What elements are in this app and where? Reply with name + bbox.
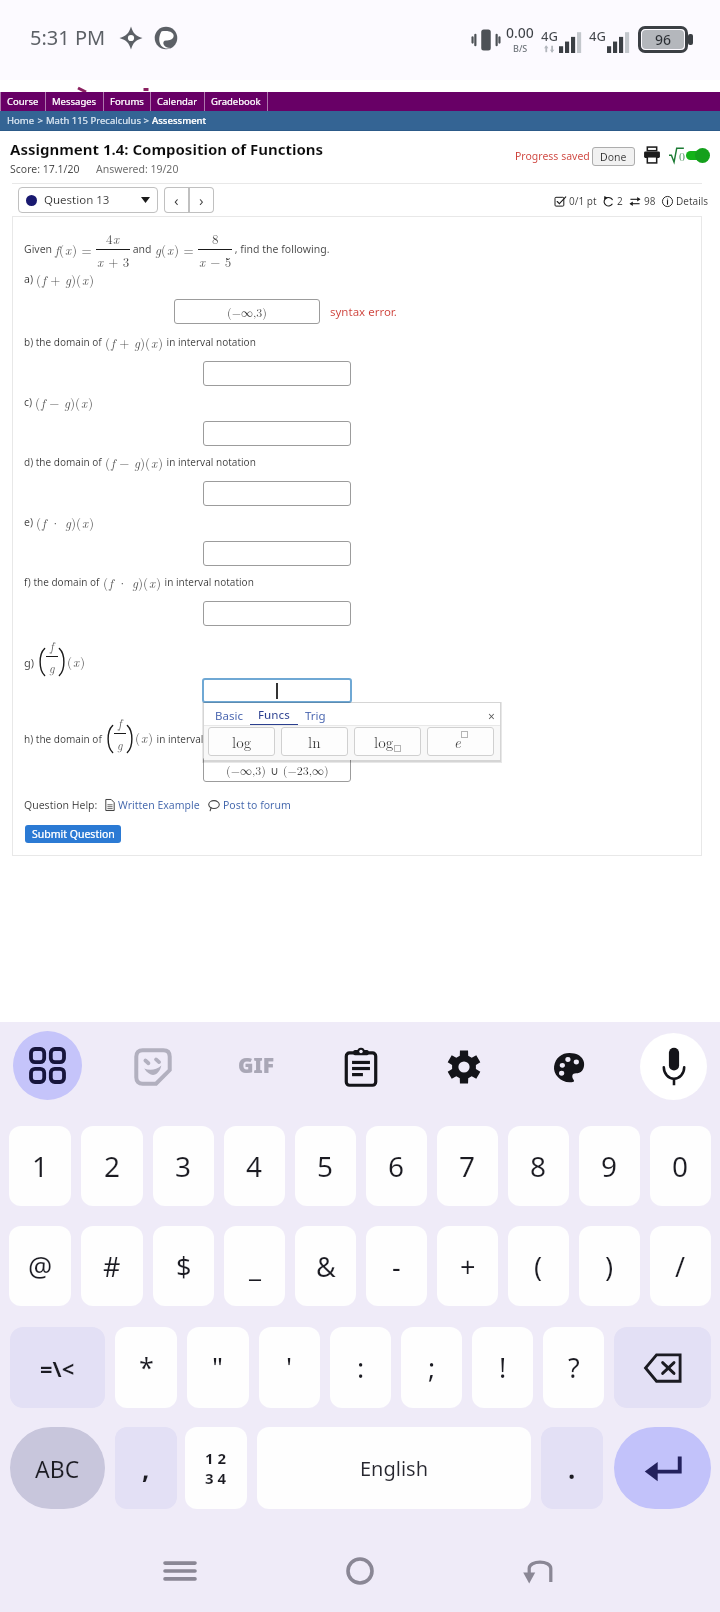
staticText: Submit Question xyxy=(32,827,115,841)
staticText: B/S xyxy=(513,42,528,54)
staticText: Math 115 Precalculus xyxy=(46,114,141,127)
staticText: 3 4 xyxy=(205,1468,227,1488)
staticText: 4G xyxy=(541,27,558,45)
button[interactable]: ' xyxy=(259,1327,320,1408)
staticText: ( xyxy=(67,652,73,670)
button[interactable]: Next question xyxy=(189,187,214,213)
button[interactable]: Print xyxy=(643,146,661,164)
button[interactable]: 5 xyxy=(295,1126,356,1206)
button[interactable]: Trig xyxy=(298,705,333,726)
button[interactable] xyxy=(203,541,351,566)
button[interactable]: log xyxy=(208,727,275,756)
button[interactable]: GIF xyxy=(226,1042,286,1088)
button[interactable]: 1 xyxy=(9,1126,71,1206)
button[interactable] xyxy=(203,601,351,626)
button[interactable]: . xyxy=(541,1427,603,1509)
button[interactable]: Back xyxy=(510,1541,570,1601)
button[interactable]: log xyxy=(354,727,421,756)
staticText: g xyxy=(65,270,71,288)
button[interactable]: ( xyxy=(508,1226,569,1306)
button[interactable]: Funcs xyxy=(251,705,297,724)
button[interactable]: 8 xyxy=(508,1126,569,1206)
button[interactable]: Home xyxy=(330,1541,390,1601)
button[interactable]: Previous question xyxy=(164,187,189,213)
button[interactable] xyxy=(202,678,352,703)
button[interactable]: Stickers xyxy=(124,1038,181,1095)
button[interactable]: 0 xyxy=(650,1126,711,1206)
staticText: Score: 17.1/20 xyxy=(10,162,80,176)
button[interactable]: Course xyxy=(1,92,45,111)
button[interactable]: 7 xyxy=(437,1126,498,1206)
button[interactable]: Post to forum xyxy=(208,798,291,812)
staticText: Answered: 19/20 xyxy=(96,162,179,176)
button[interactable]: ABC xyxy=(10,1427,105,1509)
button[interactable]: Calendar xyxy=(151,92,204,111)
button[interactable]: & xyxy=(295,1226,356,1306)
button[interactable] xyxy=(203,481,351,506)
button[interactable]: * xyxy=(115,1327,177,1408)
button[interactable]: ? xyxy=(543,1327,604,1408)
button[interactable]: ) xyxy=(579,1226,640,1306)
staticText: › xyxy=(199,190,204,210)
button[interactable]: 4 xyxy=(224,1126,285,1206)
button[interactable]: - xyxy=(366,1226,427,1306)
staticText: )( xyxy=(140,453,151,471)
button[interactable]: Settings xyxy=(435,1038,492,1095)
button[interactable]: Math view toggle xyxy=(686,148,710,163)
staticText: f) the domain of xyxy=(24,575,103,589)
staticText: " xyxy=(212,1349,224,1386)
button[interactable]: (−∞,3) xyxy=(174,299,320,324)
button[interactable]: 6 xyxy=(366,1126,427,1206)
button[interactable]: Close palette xyxy=(484,708,498,722)
button[interactable]: @ xyxy=(9,1226,71,1306)
button[interactable]: + xyxy=(437,1226,498,1306)
button[interactable]: ; xyxy=(401,1327,462,1408)
button[interactable]: Forums xyxy=(104,92,150,111)
button[interactable]: Done xyxy=(592,147,635,166)
staticText: Course xyxy=(7,95,39,108)
button[interactable]: 9 xyxy=(579,1126,640,1206)
staticText: 0 xyxy=(679,147,686,164)
button[interactable]: Themes xyxy=(541,1039,598,1096)
button[interactable]: Written Example xyxy=(105,798,200,812)
button[interactable]: Apps xyxy=(13,1031,82,1100)
button[interactable]: English xyxy=(257,1427,531,1509)
button[interactable]: Voice input xyxy=(640,1033,707,1100)
button[interactable]: Gradebook xyxy=(205,92,267,111)
button[interactable]: Clipboard xyxy=(332,1038,389,1095)
button[interactable]: $ xyxy=(153,1226,214,1306)
button[interactable]: 2 xyxy=(81,1126,143,1206)
staticText: 9 xyxy=(601,1147,618,1185)
button[interactable]: Basic xyxy=(208,705,250,726)
staticText: ( xyxy=(36,270,42,288)
staticText: ) xyxy=(80,652,86,670)
button[interactable] xyxy=(203,361,351,386)
button[interactable] xyxy=(203,421,351,446)
button[interactable]: Question 13 xyxy=(18,187,158,213)
button[interactable]: Messages xyxy=(46,92,103,111)
staticText: Assessment xyxy=(152,114,207,127)
staticText: f xyxy=(118,714,122,731)
staticText: Details xyxy=(676,194,709,208)
button[interactable]: " xyxy=(187,1327,249,1408)
button[interactable]: =\< xyxy=(10,1327,105,1408)
button[interactable]: (−∞,3) ∪ (−23,∞) xyxy=(203,757,351,782)
button[interactable]: Recent apps xyxy=(150,1541,210,1601)
button[interactable]: , xyxy=(115,1427,177,1509)
staticText: ) xyxy=(156,573,162,591)
button[interactable]: Submit Question xyxy=(25,825,121,843)
button[interactable]: : xyxy=(330,1327,391,1408)
staticText: 5 xyxy=(317,1147,334,1185)
button[interactable]: 1 2 xyxy=(185,1427,247,1509)
button[interactable]: ln xyxy=(281,727,348,756)
button[interactable]: Enter xyxy=(614,1427,711,1509)
button[interactable]: e xyxy=(427,727,494,756)
button[interactable]: # xyxy=(81,1226,143,1306)
staticText: ( xyxy=(103,573,109,591)
button[interactable]: 3 xyxy=(153,1126,214,1206)
button[interactable]: _ xyxy=(224,1226,285,1306)
button[interactable]: ! xyxy=(472,1327,533,1408)
button[interactable]: / xyxy=(650,1226,711,1306)
button[interactable]: Backspace xyxy=(614,1327,711,1408)
staticText: ! xyxy=(499,1349,507,1386)
